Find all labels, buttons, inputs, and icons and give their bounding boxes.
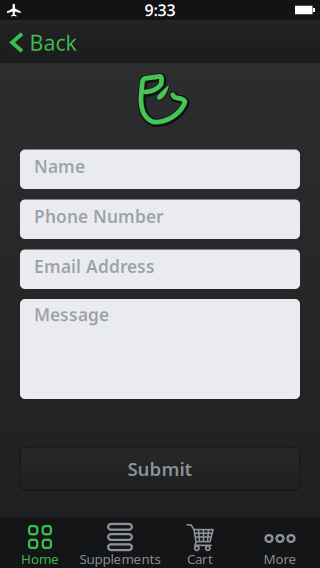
button[interactable]: Supplements [80,517,160,568]
staticText: Name [34,155,85,178]
staticText: More [263,550,296,568]
button[interactable]: More [240,517,320,568]
button[interactable]: Message [20,299,300,399]
button[interactable]: Home [0,517,80,568]
staticText: Message [34,303,109,326]
staticText: Back [29,28,76,57]
staticText: 9:33 [144,0,175,21]
button[interactable]: Phone Number [20,199,300,239]
button[interactable]: Submit [20,447,300,490]
staticText: Submit [127,456,192,481]
staticText: Email Address [34,255,155,278]
staticText: Cart [187,550,213,568]
button[interactable]: Cart [160,517,240,568]
staticText: Home [21,550,59,568]
button[interactable]: Email Address [20,249,300,289]
staticText: Supplements [79,550,160,568]
staticText: Phone Number [34,205,164,228]
button[interactable]: Back [0,27,76,56]
button[interactable]: Name [20,149,300,189]
